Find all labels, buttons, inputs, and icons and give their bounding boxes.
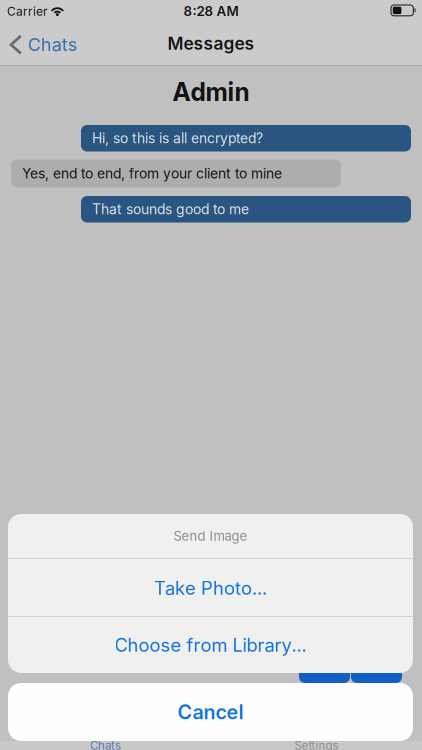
staticText: Choose from Library... bbox=[114, 634, 306, 656]
staticText: Chats bbox=[90, 739, 121, 750]
staticText: Messages bbox=[167, 33, 254, 54]
staticText: Yes, end to end, from your client to min… bbox=[22, 165, 282, 182]
staticText: Cancel bbox=[177, 700, 243, 724]
button[interactable]: Chats bbox=[0, 27, 89, 66]
staticText: That sounds good to me bbox=[92, 201, 249, 218]
button[interactable]: Cancel bbox=[8, 683, 413, 741]
staticText: Send Image bbox=[173, 528, 247, 544]
button[interactable]: Chats bbox=[0, 741, 211, 750]
staticText: Carrier bbox=[7, 4, 48, 18]
staticText: Hi, so this is all encrypted? bbox=[92, 130, 263, 147]
button[interactable]: Choose from Library... bbox=[8, 617, 413, 673]
staticText: 8:28 AM bbox=[183, 3, 238, 19]
staticText: Take Photo... bbox=[154, 577, 267, 599]
button[interactable]: Settings bbox=[211, 741, 422, 750]
button[interactable]: Take Photo... bbox=[8, 559, 413, 617]
staticText: Admin bbox=[172, 77, 249, 107]
staticText: Settings bbox=[294, 739, 338, 750]
staticText: Chats bbox=[28, 34, 77, 55]
